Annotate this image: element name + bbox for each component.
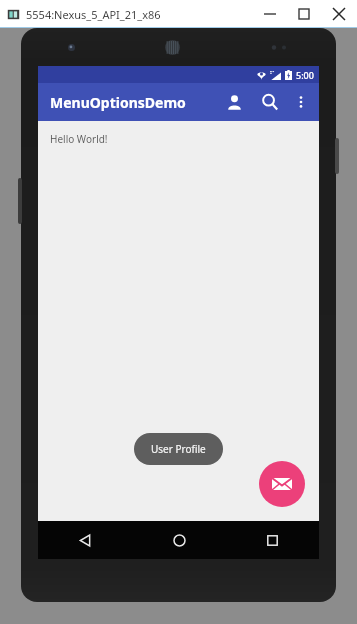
- button[interactable]: Back: [64, 521, 106, 559]
- button[interactable]: Search: [252, 84, 288, 120]
- button[interactable]: User Profile: [134, 433, 223, 465]
- button[interactable]: Minimize: [253, 0, 287, 28]
- button[interactable]: Send email: [259, 461, 305, 507]
- button[interactable]: Home: [158, 521, 200, 559]
- button[interactable]: More options: [288, 89, 314, 115]
- button[interactable]: Maximize: [287, 0, 321, 28]
- button[interactable]: Recent apps: [251, 521, 293, 559]
- button[interactable]: User profile: [216, 84, 252, 120]
- staticText: MenuOptionsDemo: [50, 93, 186, 112]
- staticText: 5:00: [296, 69, 314, 81]
- staticText: User Profile: [151, 442, 206, 456]
- staticText: 5554:Nexus_5_API_21_x86: [26, 7, 161, 22]
- staticText: Hello World!: [50, 132, 108, 146]
- button[interactable]: Close: [321, 0, 357, 28]
